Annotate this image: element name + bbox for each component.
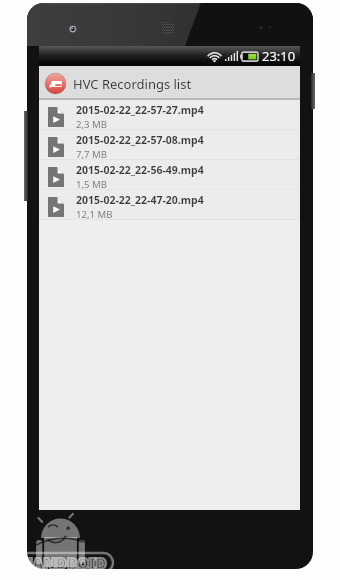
staticText: HVC Recordings list — [73, 75, 192, 93]
button[interactable]: 2015-02-22_22-47-20.mp4 — [39, 190, 300, 219]
button[interactable]: HVC Recordings list — [39, 66, 300, 100]
staticText: EEANDROID — [16, 553, 107, 573]
button[interactable]: 2015-02-22_22-57-08.mp4 — [39, 130, 300, 159]
staticText: 2015-02-22_22-57-08.mp4 — [76, 133, 204, 147]
staticText: 7,7 MB — [76, 148, 107, 161]
button[interactable]: 2015-02-22_22-56-49.mp4 — [39, 160, 300, 189]
staticText: 2015-02-22_22-47-20.mp4 — [76, 193, 204, 207]
staticText: 2,3 MB — [76, 118, 107, 131]
staticText: 2015-02-22_22-57-27.mp4 — [76, 103, 204, 117]
staticText: 1,5 MB — [76, 178, 107, 191]
staticText: 2015-02-22_22-56-49.mp4 — [76, 163, 204, 177]
button[interactable]: 2015-02-22_22-57-27.mp4 — [39, 100, 300, 129]
staticText: 12,1 MB — [76, 208, 113, 221]
staticText: 23:10 — [262, 47, 296, 65]
